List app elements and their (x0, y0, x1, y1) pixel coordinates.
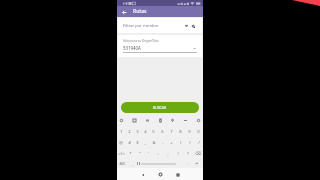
button[interactable]: Home (156, 170, 165, 179)
staticText: 531940A (123, 45, 141, 51)
staticText: . (186, 161, 188, 167)
staticText: Seleccione su Origen/Dest (123, 39, 159, 43)
staticText: Rutas (133, 8, 147, 15)
button[interactable]: 3 (133, 126, 141, 137)
button[interactable]: Keyboard tool 4 (169, 117, 176, 124)
staticText: ; (167, 151, 169, 157)
button[interactable]: ; (163, 148, 173, 159)
staticText: / (198, 140, 200, 146)
staticText: =\< (118, 151, 125, 157)
button[interactable]: / (194, 137, 203, 148)
staticText: 6 (161, 129, 164, 135)
button[interactable]: # (125, 137, 133, 148)
button[interactable]: Keyboard tool 5 (182, 117, 189, 124)
staticText: 3 (136, 129, 139, 135)
button[interactable]: _ (141, 137, 149, 148)
staticText: ) (189, 140, 191, 146)
staticText: 1 (120, 129, 123, 135)
button[interactable]: 6 (158, 126, 167, 137)
button[interactable]: $ (133, 137, 141, 148)
staticText: 7 (170, 129, 173, 135)
staticText: ( (180, 140, 182, 146)
staticText: ? (187, 151, 189, 157)
button[interactable]: ? (183, 148, 193, 159)
staticText: BUSCAR (153, 105, 167, 110)
staticText: # (128, 140, 131, 146)
staticText: + (170, 140, 173, 146)
button[interactable]: ( (176, 137, 185, 148)
button[interactable]: Recents (173, 170, 182, 179)
staticText: 2 (128, 129, 131, 135)
button[interactable]: Filter (183, 23, 189, 29)
button[interactable]: =\< (117, 148, 126, 159)
button[interactable]: ) (185, 137, 194, 148)
button[interactable]: 8 (176, 126, 185, 137)
button[interactable]: & (149, 137, 158, 148)
button[interactable]: Keyboard tool 1 (131, 117, 138, 124)
staticText: & (152, 140, 156, 146)
button[interactable]: 5 (149, 126, 158, 137)
button[interactable]: Expand (192, 46, 197, 51)
staticText: 9 (188, 129, 191, 135)
staticText: _ (144, 140, 146, 146)
button[interactable]: Keyboard tool 3 (157, 117, 164, 124)
button[interactable]: , (128, 159, 137, 168)
staticText: , (132, 161, 134, 167)
button[interactable]: ABC (117, 159, 128, 168)
button[interactable]: Keyboard tool 0 (118, 117, 125, 124)
button[interactable]: Back (120, 8, 128, 16)
staticText: 0 (197, 129, 200, 135)
staticText: @ (119, 140, 123, 146)
staticText: " (139, 151, 141, 157)
staticText: : (157, 151, 159, 157)
staticText: ! (177, 151, 179, 157)
button[interactable]: @ (117, 137, 125, 148)
button[interactable]: * (126, 148, 135, 159)
button[interactable]: ' (144, 148, 153, 159)
button[interactable]: ! (173, 148, 183, 159)
button[interactable]: Filtrar por nombre (118, 18, 202, 33)
button[interactable]: ↵ (191, 159, 203, 168)
staticText: - (162, 140, 164, 146)
staticText: 8 (179, 129, 182, 135)
staticText: Filtrar por nombre (123, 23, 159, 29)
button[interactable]: Keyboard tool 6 (195, 117, 202, 124)
button[interactable]: BUSCAR (121, 102, 199, 113)
button[interactable]: Keyboard tool 2 (144, 117, 151, 124)
staticText: $ (136, 140, 139, 146)
button[interactable]: Space (137, 159, 182, 168)
button[interactable]: ⌫ (193, 148, 203, 159)
staticText: ⌫ (195, 151, 201, 156)
button[interactable]: 7 (167, 126, 176, 137)
button[interactable]: 2 (125, 126, 133, 137)
staticText: 4 (144, 129, 147, 135)
staticText: 5 (152, 129, 155, 135)
button[interactable]: + (167, 137, 176, 148)
button[interactable]: Search (190, 23, 196, 29)
staticText: ABC (119, 162, 126, 166)
button[interactable]: 9 (185, 126, 194, 137)
button[interactable]: 4 (141, 126, 149, 137)
button[interactable]: 1 (117, 126, 125, 137)
staticText: * (129, 151, 132, 157)
button[interactable]: 0 (194, 126, 203, 137)
button[interactable]: Back (138, 170, 147, 179)
staticText: ↵ (195, 161, 199, 166)
staticText: ' (148, 151, 149, 157)
button[interactable]: " (135, 148, 144, 159)
